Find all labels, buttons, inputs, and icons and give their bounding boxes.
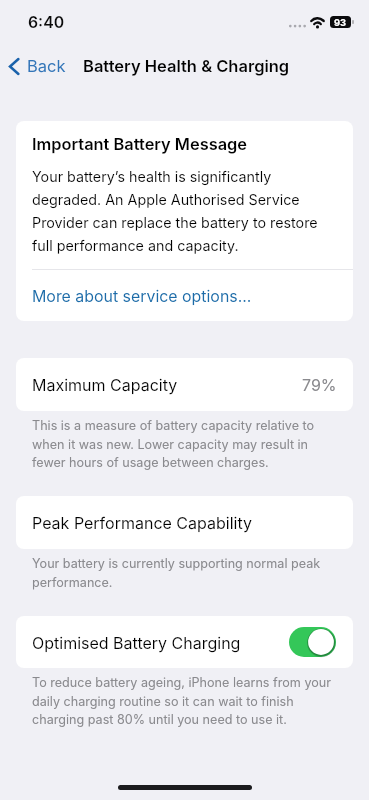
- button[interactable]: Back: [0, 50, 74, 82]
- staticText: Important Battery Message: [32, 134, 248, 154]
- staticText: This is a measure of battery capacity re…: [32, 418, 337, 470]
- staticText: Your battery’s health is significantly d…: [32, 168, 337, 254]
- button[interactable]: Optimised Battery Charging toggle: [289, 627, 336, 657]
- staticText: Back: [27, 56, 66, 76]
- button[interactable]: Maximum Capacity: [16, 358, 353, 411]
- staticText: Optimised Battery Charging: [32, 633, 241, 652]
- staticText: Your battery is currently supporting nor…: [32, 556, 337, 590]
- staticText: Peak Performance Capability: [32, 513, 252, 532]
- button[interactable]: More about service options...: [16, 270, 353, 321]
- staticText: Maximum Capacity: [32, 375, 178, 394]
- staticText: 6:40: [28, 13, 65, 32]
- staticText: To reduce battery ageing, iPhone learns …: [32, 675, 337, 727]
- staticText: Battery Health & Charging: [83, 56, 290, 76]
- staticText: 79%: [302, 375, 337, 394]
- button[interactable]: Peak Performance Capability: [16, 496, 353, 549]
- staticText: More about service options...: [32, 287, 252, 306]
- staticText: 93: [334, 17, 347, 28]
